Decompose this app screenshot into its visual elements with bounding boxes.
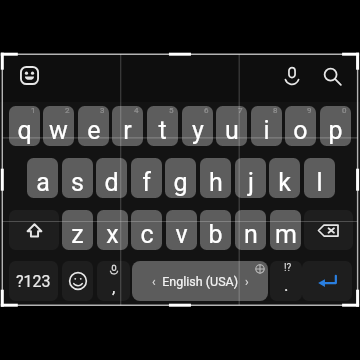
button[interactable]: i xyxy=(251,106,282,146)
staticText: j xyxy=(248,168,254,197)
button[interactable]: Stickers xyxy=(11,57,48,94)
staticText: 5 xyxy=(169,106,174,115)
button[interactable]: m xyxy=(270,210,301,250)
button[interactable]: d xyxy=(96,158,127,198)
staticText: w xyxy=(49,116,68,145)
staticText: n xyxy=(244,220,258,249)
staticText: s xyxy=(71,168,84,197)
staticText: h xyxy=(209,168,223,197)
button[interactable]: h xyxy=(200,158,231,198)
staticText: b xyxy=(208,220,223,249)
button[interactable]: c xyxy=(131,210,162,250)
button[interactable]: Enter xyxy=(302,261,352,301)
staticText: i xyxy=(263,116,270,145)
button[interactable]: a xyxy=(27,158,58,198)
button[interactable]: n xyxy=(235,210,266,250)
staticText: l xyxy=(316,168,323,197)
button[interactable]: g xyxy=(165,158,196,198)
button[interactable]: v xyxy=(166,210,197,250)
staticText: 7 xyxy=(238,106,243,115)
staticText: z xyxy=(71,220,84,249)
staticText: q xyxy=(17,116,32,145)
button[interactable]: s xyxy=(62,158,93,198)
staticText: t xyxy=(158,116,167,145)
button[interactable]: ‹ xyxy=(132,261,268,301)
button[interactable]: Comma, voice input xyxy=(97,261,130,301)
staticText: r xyxy=(123,116,132,145)
button[interactable]: r xyxy=(112,106,143,146)
button[interactable]: u xyxy=(216,106,247,146)
staticText: , xyxy=(112,277,116,297)
staticText: 0 xyxy=(342,106,347,115)
button[interactable]: q xyxy=(9,106,40,146)
staticText: a xyxy=(36,168,50,197)
button[interactable]: Search xyxy=(314,58,351,95)
button[interactable]: b xyxy=(200,210,231,250)
staticText: !? xyxy=(284,262,292,274)
button[interactable]: p xyxy=(320,106,351,146)
staticText: ?123 xyxy=(16,272,51,291)
staticText: 8 xyxy=(273,106,278,115)
button[interactable]: z xyxy=(62,210,93,250)
staticText: p xyxy=(328,116,343,145)
staticText: k xyxy=(278,168,291,197)
staticText: o xyxy=(293,116,308,145)
button[interactable]: x xyxy=(97,210,128,250)
button[interactable]: l xyxy=(304,158,335,198)
staticText: x xyxy=(106,220,119,249)
staticText: y xyxy=(192,116,204,145)
button[interactable]: Shift xyxy=(9,210,59,250)
staticText: English (USA) xyxy=(156,274,245,289)
button[interactable]: Voice input xyxy=(274,58,310,94)
staticText: ‹ xyxy=(152,275,156,289)
button[interactable]: Backspace xyxy=(304,210,353,250)
staticText: g xyxy=(173,168,188,197)
staticText: 9 xyxy=(307,106,312,115)
staticText: 2 xyxy=(65,106,70,115)
button[interactable]: e xyxy=(78,106,109,146)
staticText: . xyxy=(284,275,289,295)
staticText: c xyxy=(140,220,154,249)
staticText: f xyxy=(142,168,151,197)
button[interactable]: Period xyxy=(270,261,302,301)
button[interactable]: Emoji xyxy=(62,261,93,301)
button[interactable]: w xyxy=(43,106,74,146)
staticText: 4 xyxy=(134,106,139,115)
staticText: d xyxy=(104,168,119,197)
staticText: 3 xyxy=(100,106,105,115)
staticText: u xyxy=(225,116,239,145)
staticText: 1 xyxy=(31,106,36,115)
staticText: 6 xyxy=(204,106,209,115)
staticText: m xyxy=(275,220,297,249)
staticText: › xyxy=(245,275,249,289)
button[interactable]: o xyxy=(285,106,316,146)
button[interactable]: j xyxy=(235,158,266,198)
staticText: e xyxy=(87,116,101,145)
button[interactable]: k xyxy=(269,158,300,198)
button[interactable]: y xyxy=(182,106,213,146)
button[interactable]: t xyxy=(147,106,178,146)
staticText: v xyxy=(175,220,188,249)
button[interactable]: ?123 xyxy=(9,261,58,301)
button[interactable]: f xyxy=(131,158,162,198)
